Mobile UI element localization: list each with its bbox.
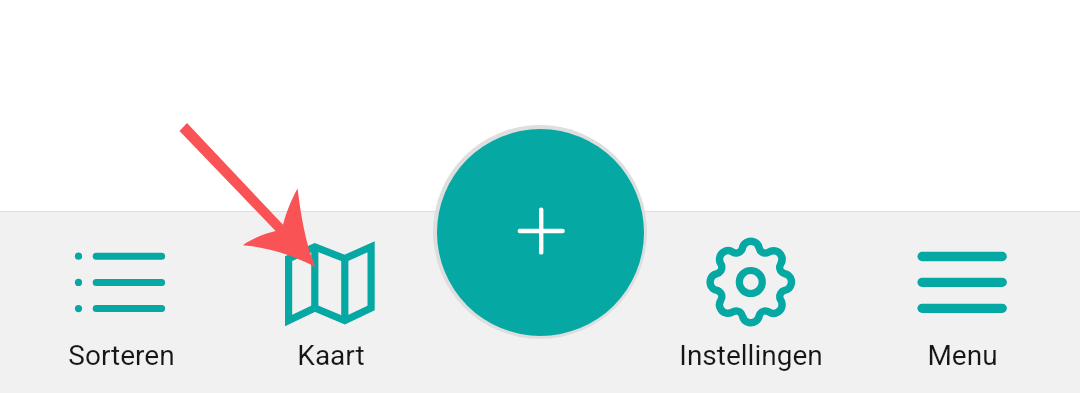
staticText: Sorteren xyxy=(68,339,175,372)
button[interactable]: Menu xyxy=(867,216,1057,393)
button[interactable]: Kaart xyxy=(236,216,426,393)
staticText: Kaart xyxy=(297,339,365,372)
staticText: Instellingen xyxy=(679,339,823,372)
staticText: Menu xyxy=(927,339,998,372)
button[interactable]: Sorteren xyxy=(26,216,216,393)
button[interactable]: Instellingen xyxy=(656,216,846,393)
button[interactable]: Toevoegen xyxy=(437,129,644,336)
